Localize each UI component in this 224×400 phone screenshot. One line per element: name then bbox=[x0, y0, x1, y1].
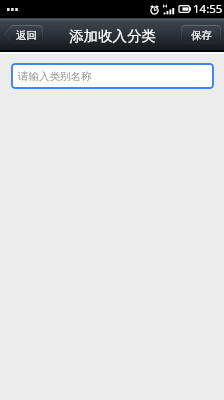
button[interactable]: 返回 bbox=[4, 25, 43, 43]
staticText: 请输入类别名称 bbox=[18, 70, 92, 83]
staticText: 保存 bbox=[191, 29, 212, 42]
staticText: 添加收入分类 bbox=[69, 27, 156, 45]
button[interactable]: 保存 bbox=[181, 25, 221, 43]
button[interactable]: 请输入类别名称 bbox=[11, 63, 214, 89]
staticText: 返回 bbox=[16, 29, 37, 42]
staticText: 14:55 bbox=[193, 1, 223, 17]
